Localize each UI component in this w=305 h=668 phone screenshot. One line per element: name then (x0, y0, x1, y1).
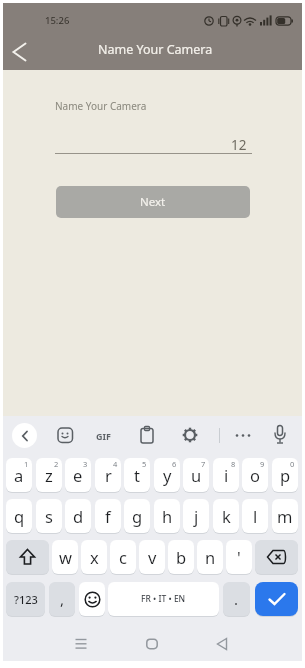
staticText: p (280, 464, 291, 486)
staticText: 5 (142, 459, 147, 469)
button[interactable]: ?123 (6, 582, 45, 616)
button[interactable] (6, 540, 49, 574)
button[interactable]: x (81, 540, 107, 574)
button[interactable]: u (183, 458, 209, 492)
button[interactable]: f (95, 499, 121, 533)
button[interactable]: b (168, 540, 194, 574)
button[interactable]: z (36, 458, 62, 492)
staticText: s (45, 505, 53, 527)
staticText: ' (237, 546, 241, 568)
staticText: j (194, 505, 199, 527)
staticText: m (277, 505, 293, 527)
button[interactable]: Next (56, 186, 250, 218)
staticText: Name Your Camera (98, 41, 213, 58)
staticText: 6 (172, 459, 177, 469)
button[interactable]: ' (226, 540, 252, 574)
staticText: q (14, 505, 25, 527)
button[interactable]: n (197, 540, 223, 574)
button[interactable]: q (6, 499, 32, 533)
staticText: l (253, 505, 258, 527)
button[interactable]: a (6, 458, 32, 492)
button[interactable]: l (242, 499, 268, 533)
staticText: a (14, 464, 24, 486)
button[interactable]: s (36, 499, 62, 533)
staticText: 8 (231, 459, 236, 469)
button[interactable]: FR • IT • EN (108, 582, 219, 616)
staticText: c (119, 546, 127, 568)
staticText: 1 (24, 459, 29, 469)
staticText: y (163, 464, 172, 486)
staticText: z (45, 464, 53, 486)
staticText: 0 (290, 459, 295, 469)
button[interactable] (210, 632, 234, 656)
staticText: x (90, 546, 99, 568)
button[interactable] (255, 540, 298, 574)
staticText: 2 (54, 459, 59, 469)
staticText: g (132, 505, 143, 527)
button[interactable]: d (65, 499, 91, 533)
button[interactable] (69, 632, 93, 656)
staticText: Name Your Camera (55, 99, 147, 113)
button[interactable]: c (110, 540, 136, 574)
staticText: . (234, 589, 239, 609)
staticText: , (60, 589, 65, 609)
staticText: t (134, 464, 140, 486)
button[interactable]: v (139, 540, 165, 574)
button[interactable]: y (154, 458, 180, 492)
button[interactable]: j (183, 499, 209, 533)
staticText: o (250, 464, 260, 486)
staticText: v (148, 546, 157, 568)
staticText: k (222, 505, 231, 527)
button[interactable]: h (154, 499, 180, 533)
button[interactable] (182, 427, 198, 443)
button[interactable]: m (272, 499, 298, 533)
button[interactable]: o (242, 458, 268, 492)
staticText: GIF (96, 430, 111, 442)
button[interactable]: r (95, 458, 121, 492)
button[interactable]: e (65, 458, 91, 492)
button[interactable]: g (124, 499, 150, 533)
staticText: 12 (231, 136, 247, 154)
staticText: 4 (113, 459, 118, 469)
button[interactable] (274, 425, 286, 445)
staticText: 15:26 (45, 14, 70, 27)
button[interactable]: p (272, 458, 298, 492)
staticText: n (205, 546, 216, 568)
staticText: f (105, 505, 111, 527)
staticText: w (59, 546, 72, 568)
button[interactable] (12, 423, 37, 448)
staticText: 3 (83, 459, 88, 469)
staticText: i (224, 464, 229, 486)
button[interactable]: , (49, 582, 75, 616)
button[interactable] (79, 582, 105, 616)
button[interactable] (6, 36, 38, 68)
button[interactable]: t (124, 458, 150, 492)
button[interactable]: i (213, 458, 239, 492)
button[interactable] (140, 632, 164, 656)
button[interactable] (255, 582, 298, 616)
staticText: 7 (201, 459, 206, 469)
staticText: e (73, 464, 83, 486)
staticText: 9 (260, 459, 265, 469)
staticText: Next (140, 194, 166, 210)
staticText: b (176, 546, 187, 568)
staticText: u (191, 464, 202, 486)
staticText: h (162, 505, 173, 527)
staticText: FR • IT • EN (141, 593, 186, 605)
button[interactable]: . (223, 582, 250, 616)
staticText: ?123 (14, 592, 38, 607)
button[interactable]: w (52, 540, 78, 574)
staticText: r (105, 464, 112, 486)
staticText: d (73, 505, 84, 527)
button[interactable] (140, 426, 154, 444)
button[interactable] (57, 427, 74, 444)
button[interactable]: k (213, 499, 239, 533)
